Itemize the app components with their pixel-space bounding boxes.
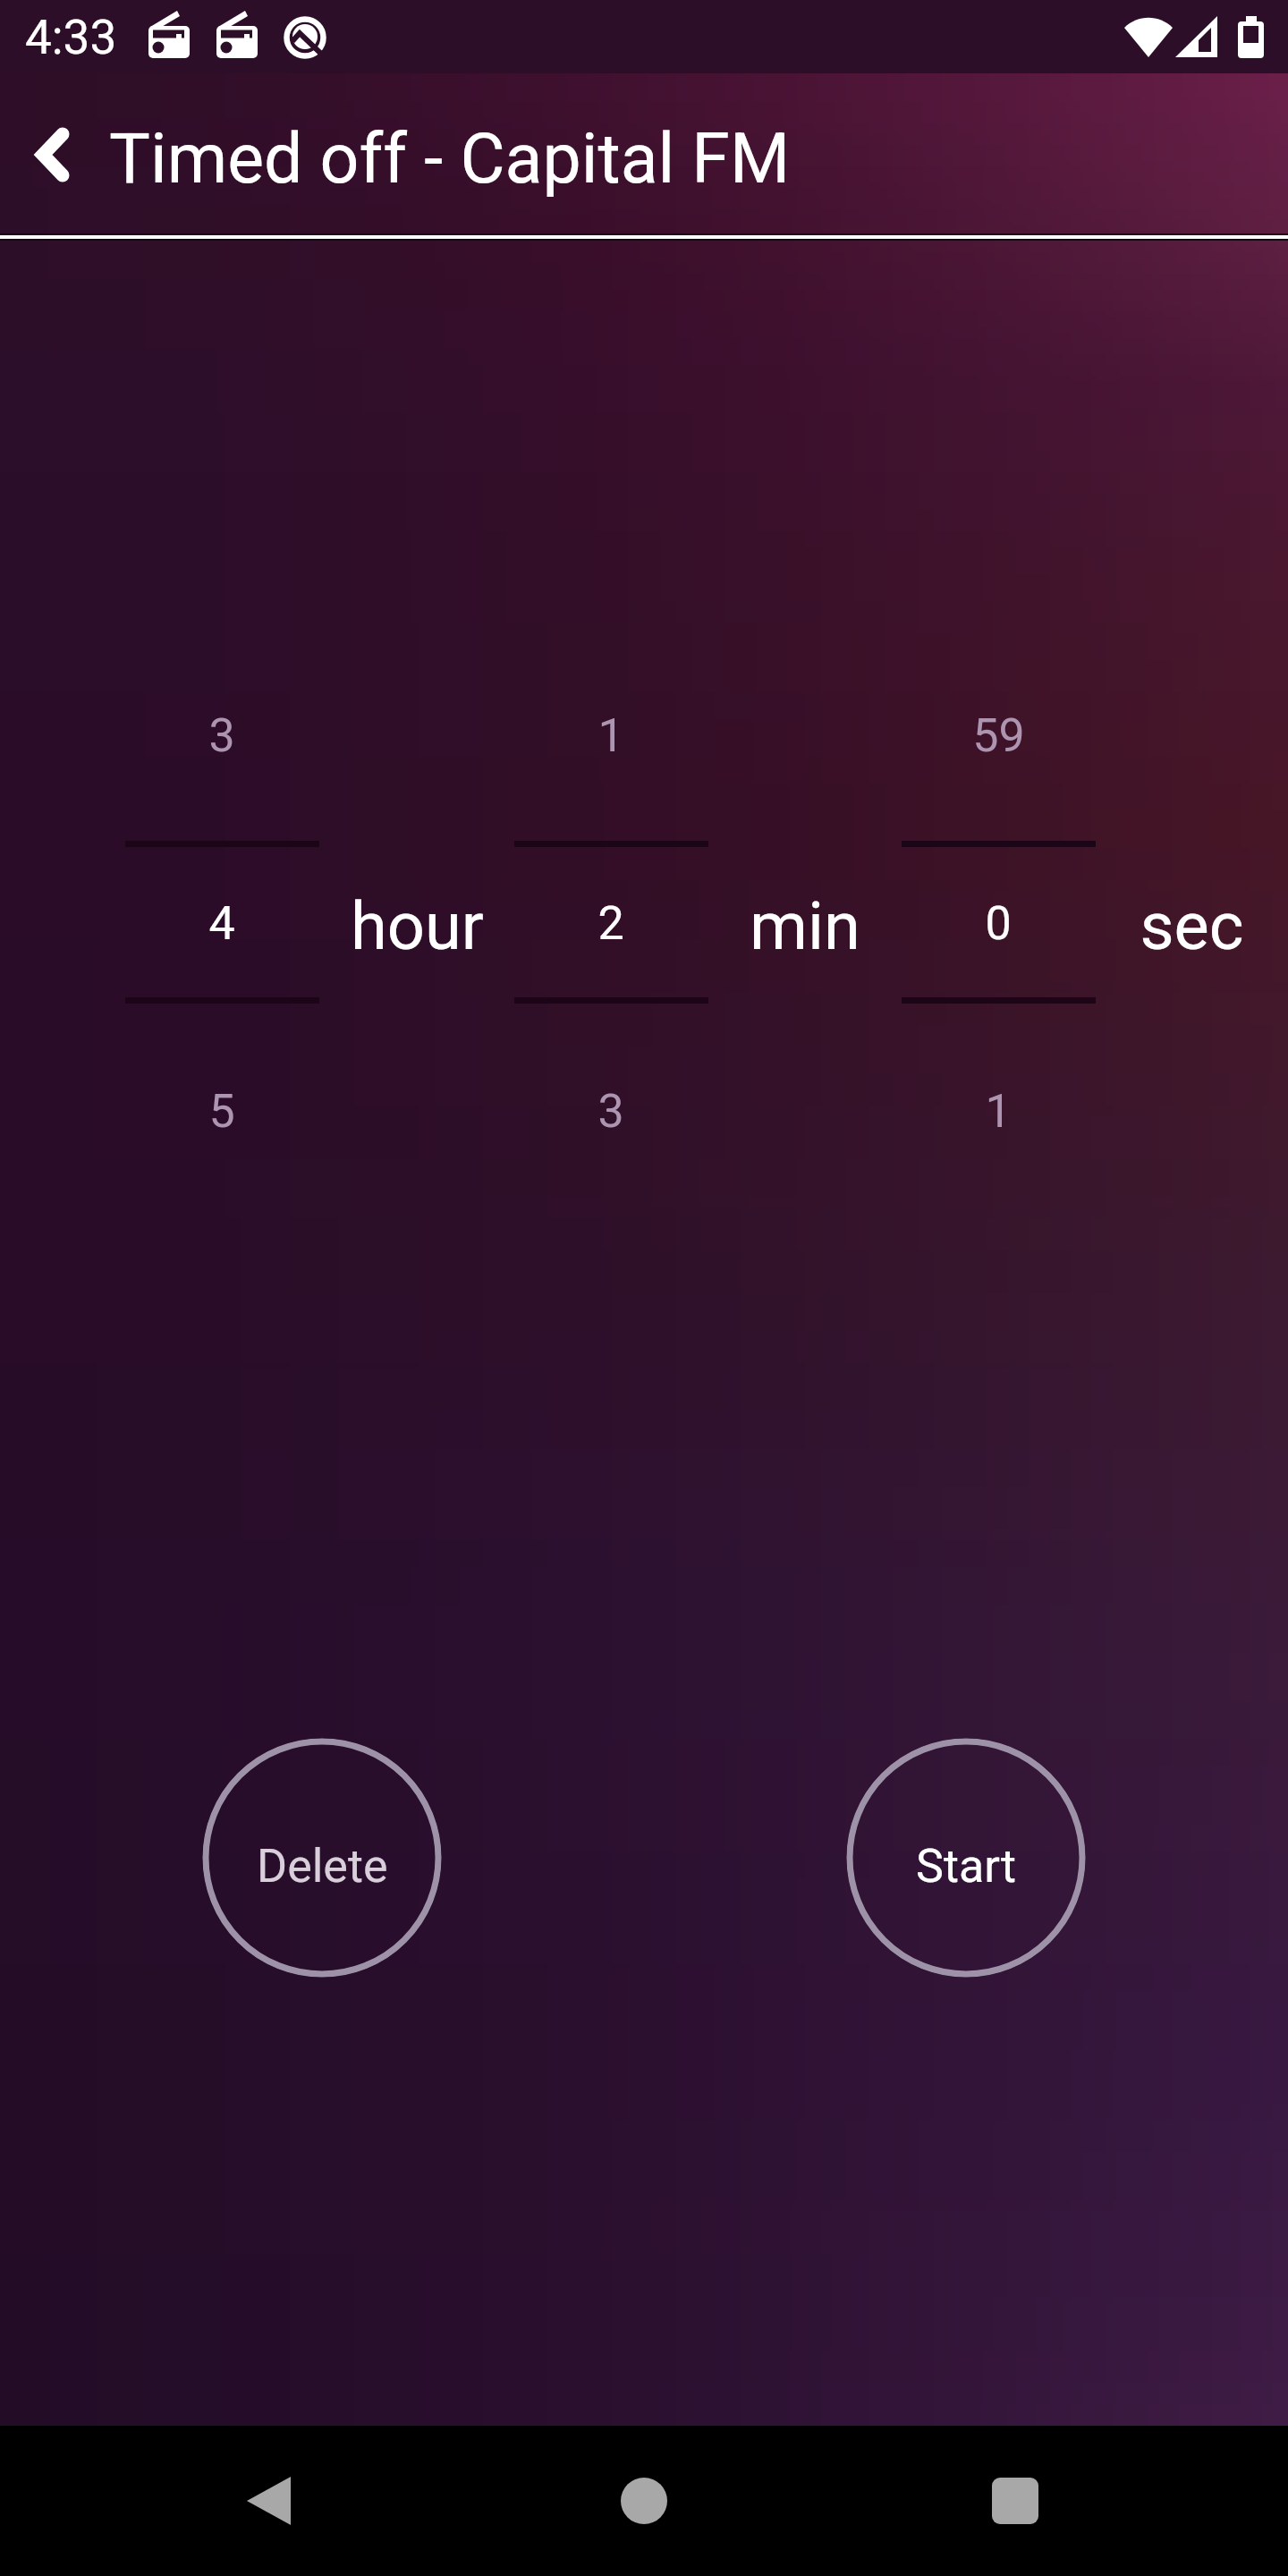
button[interactable]: Start — [846, 1738, 1086, 1978]
staticText: Timed off - Capital FM — [109, 119, 791, 199]
staticText: 59 — [972, 708, 1025, 763]
button[interactable] — [902, 689, 1096, 1154]
staticText: 2 — [597, 896, 624, 951]
button[interactable] — [125, 689, 319, 1154]
staticText: 0 — [985, 896, 1012, 951]
staticText: hour — [351, 887, 484, 965]
staticText: 3 — [597, 1084, 624, 1139]
button[interactable]: Delete — [202, 1738, 442, 1978]
button[interactable] — [514, 689, 708, 1154]
staticText: 4:33 — [25, 10, 117, 65]
button[interactable]: Back — [161, 2426, 376, 2576]
button[interactable]: Home — [537, 2426, 751, 2576]
staticText: sec — [1140, 887, 1244, 965]
staticText: 1 — [597, 708, 624, 763]
staticText: min — [750, 887, 860, 965]
button[interactable]: Back — [0, 90, 107, 198]
staticText: Delete — [257, 1839, 388, 1894]
staticText: Start — [916, 1839, 1017, 1894]
button[interactable]: Recent apps — [908, 2426, 1123, 2576]
staticText: 1 — [985, 1084, 1012, 1139]
staticText: 3 — [208, 708, 235, 763]
staticText: 4 — [208, 896, 235, 951]
staticText: 5 — [208, 1084, 235, 1139]
